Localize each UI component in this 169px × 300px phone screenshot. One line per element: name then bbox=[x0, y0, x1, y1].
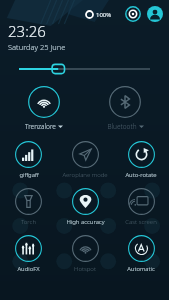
button[interactable]: Brightness bbox=[11, 62, 158, 76]
staticText: Trenzalore bbox=[25, 122, 56, 131]
staticText: Saturday 25 June bbox=[8, 42, 66, 52]
button[interactable]: Settings bbox=[125, 6, 141, 22]
button[interactable]: Auto-rotate bbox=[113, 140, 169, 180]
staticText: Auto-rotate bbox=[125, 171, 157, 179]
staticText: giffgaff bbox=[19, 171, 39, 179]
staticText: 100% bbox=[96, 11, 112, 19]
button[interactable]: Torch bbox=[0, 187, 57, 227]
button[interactable]: Trenzalore bbox=[8, 85, 80, 132]
button[interactable]: Hotspot bbox=[57, 234, 113, 274]
button[interactable]: Bluetooth bbox=[89, 85, 161, 132]
button[interactable]: Automatic bbox=[113, 234, 169, 274]
staticText: High accuracy bbox=[66, 218, 105, 226]
button[interactable]: High accuracy bbox=[57, 187, 113, 227]
button[interactable]: AudioFX bbox=[0, 234, 57, 274]
button[interactable]: Battery 100 percent bbox=[85, 6, 119, 22]
staticText: Bluetooth bbox=[107, 122, 137, 131]
staticText: Cast screen bbox=[125, 218, 157, 226]
staticText: Torch bbox=[21, 218, 36, 226]
staticText: AudioFX bbox=[17, 265, 40, 273]
staticText: Aeroplane mode bbox=[62, 171, 108, 179]
button[interactable]: giffgaff bbox=[0, 140, 57, 180]
button[interactable]: Cast screen bbox=[113, 187, 169, 227]
button[interactable]: User profile bbox=[147, 6, 163, 22]
staticText: 23:26 bbox=[8, 21, 46, 41]
staticText: Hotspot bbox=[74, 265, 96, 273]
staticText: Automatic bbox=[127, 265, 155, 273]
button[interactable]: Aeroplane mode bbox=[57, 140, 113, 180]
